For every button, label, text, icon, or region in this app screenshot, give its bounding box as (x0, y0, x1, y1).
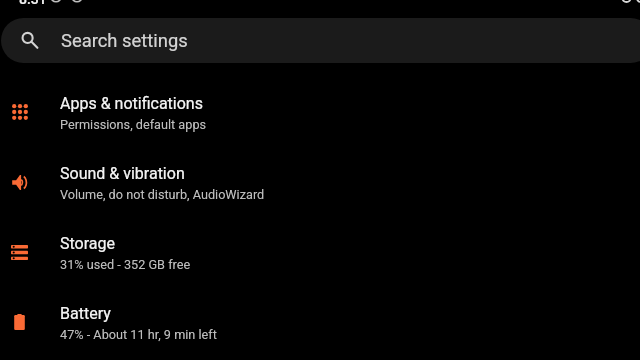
staticText: 47% - About 11 hr, 9 min left (60, 327, 217, 342)
staticText: Search settings (61, 30, 188, 52)
staticText: Apps & notifications (60, 94, 203, 113)
staticText: Battery (60, 304, 111, 323)
staticText: Storage (60, 234, 115, 253)
button[interactable]: Battery (0, 288, 640, 358)
staticText: Volume, do not disturb, AudioWizard (60, 187, 265, 202)
button[interactable]: Storage (0, 218, 640, 288)
staticText: 8:31 (19, 0, 47, 7)
button[interactable]: Apps & notifications (0, 78, 640, 148)
staticText: Sound & vibration (60, 164, 185, 183)
button[interactable]: Search settings (1, 18, 640, 63)
staticText: Permissions, default apps (60, 117, 207, 132)
button[interactable]: Sound & vibration (0, 148, 640, 218)
staticText: 31% used - 352 GB free (60, 257, 191, 272)
